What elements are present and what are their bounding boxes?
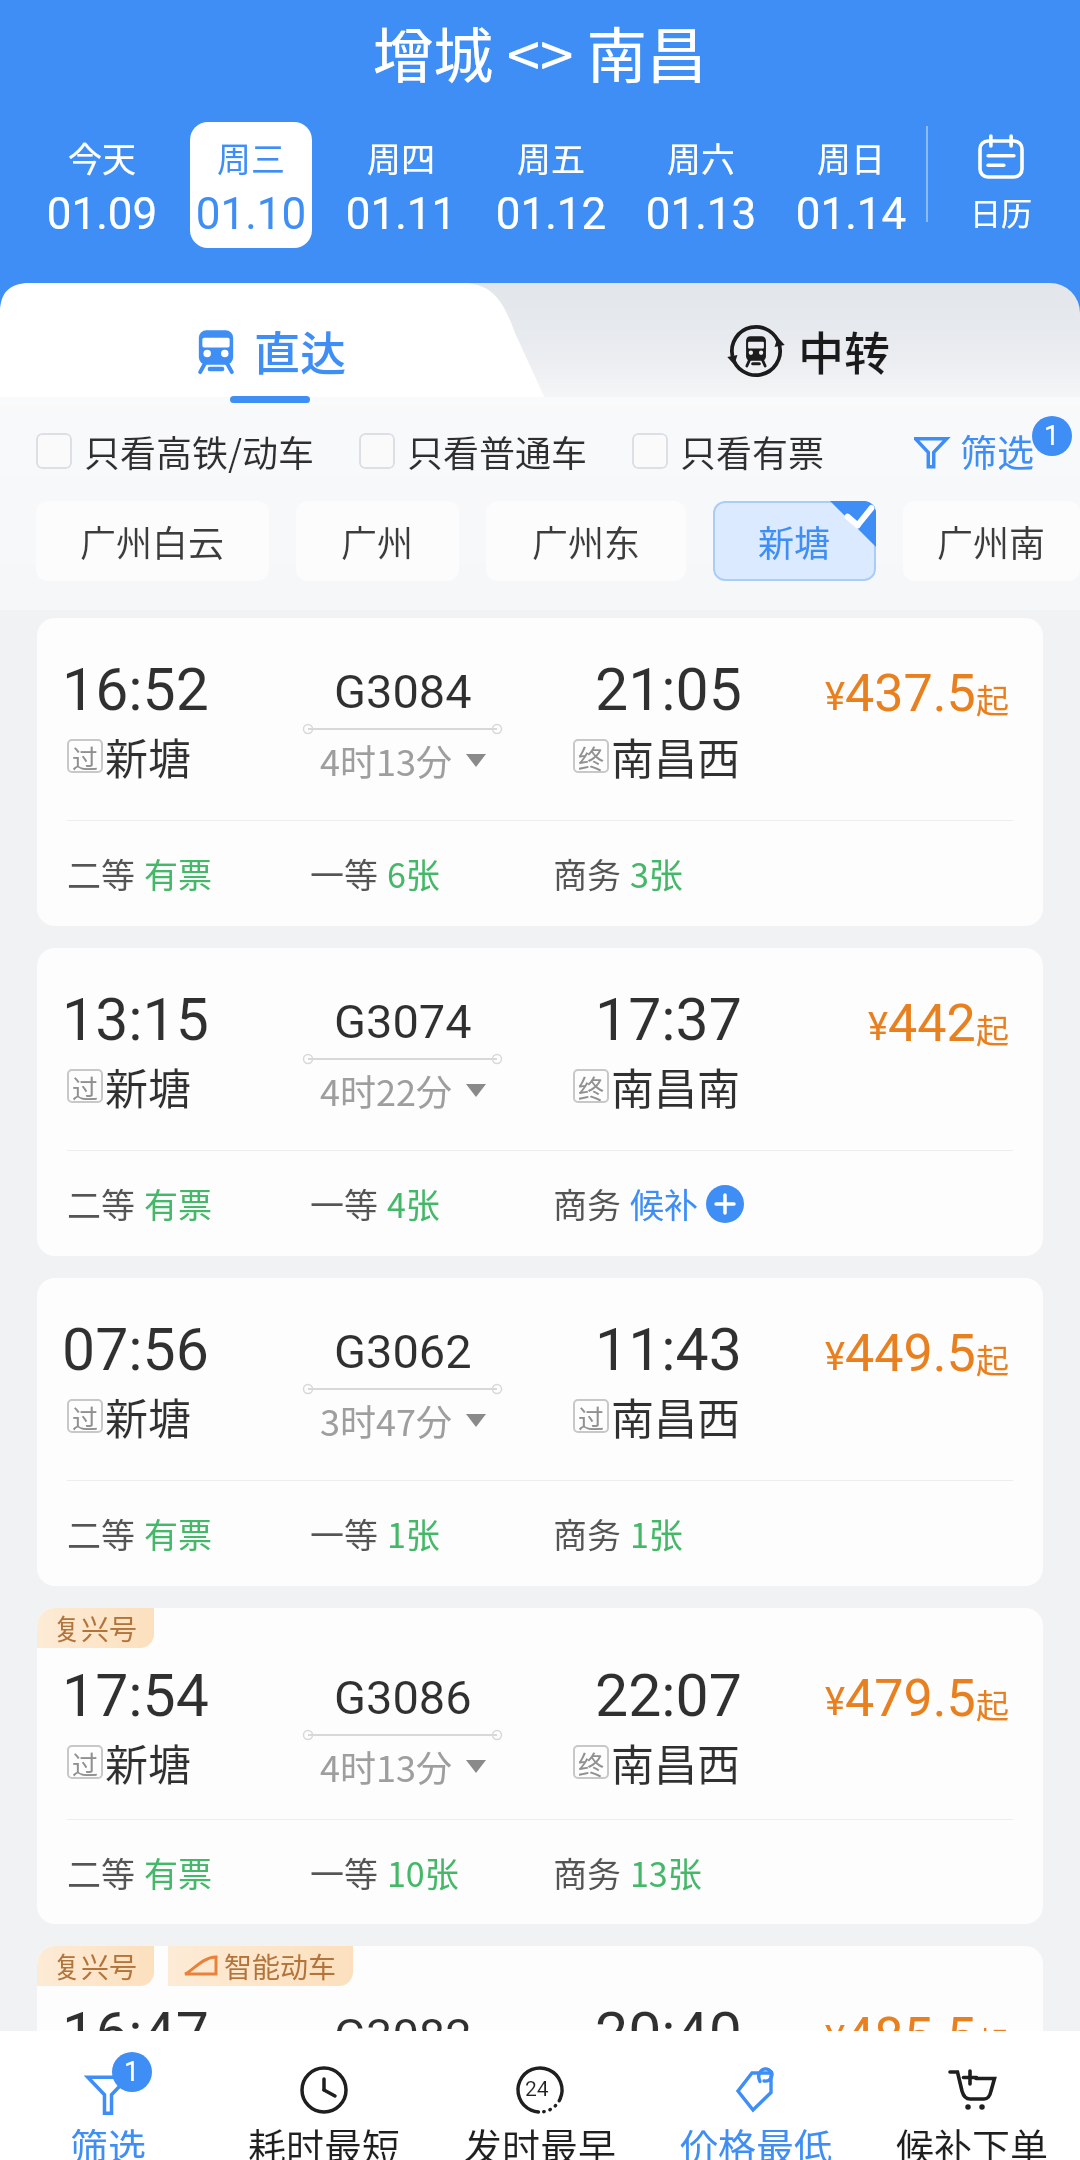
staticText: 南昌南	[611, 1055, 740, 1117]
staticText: 二等	[67, 849, 135, 898]
button[interactable]: 直达	[0, 283, 540, 411]
staticText: 智能动车	[224, 1946, 337, 1986]
button[interactable]: 筛选	[914, 424, 1034, 478]
staticText: 20:40	[595, 1999, 742, 2068]
staticText: 复兴号	[53, 1946, 138, 1986]
staticText: 1	[124, 2056, 140, 2088]
staticText: 二等	[67, 1179, 135, 1228]
staticText: 有票	[144, 1848, 212, 1897]
staticText: 13张	[630, 1848, 702, 1897]
staticText: 新塘	[105, 725, 191, 787]
staticText: 商务	[553, 1179, 621, 1228]
staticText: 新塘	[105, 1055, 191, 1117]
staticText: 广州南	[937, 515, 1046, 567]
staticText: 24	[525, 2077, 549, 2102]
staticText: 耗时最短	[248, 2117, 401, 2160]
button[interactable]: 周四	[340, 122, 462, 248]
staticText: 有票	[144, 849, 212, 898]
staticText: 起	[976, 675, 1009, 723]
staticText: 商务	[553, 1509, 621, 1558]
staticText: 22:07	[595, 1661, 742, 1730]
staticText: 终	[578, 1745, 605, 1779]
staticText: 3张	[630, 849, 683, 898]
button[interactable]: 只看普通车	[359, 425, 588, 477]
button[interactable]: 日历	[962, 122, 1040, 240]
button[interactable]: 24	[432, 2031, 648, 2160]
button[interactable]: 复兴号	[37, 1946, 1043, 2160]
staticText: 1张	[630, 1509, 683, 1558]
staticText: 南昌西	[611, 2069, 740, 2131]
staticText: 终	[578, 739, 605, 773]
button[interactable]: 1	[0, 2031, 216, 2160]
button[interactable]: 复兴号	[37, 1608, 1043, 1924]
staticText: 过	[72, 1745, 99, 1779]
button[interactable]: 广州	[296, 501, 459, 581]
staticText: 一等	[310, 1179, 378, 1228]
button[interactable]: 广州南	[903, 501, 1080, 581]
staticText: 17:37	[595, 985, 742, 1054]
staticText: 发时最早	[464, 2117, 617, 2160]
staticText: 只看高铁/动车	[84, 425, 315, 477]
staticText: 01.09	[41, 188, 163, 235]
staticText: 二等	[67, 1509, 135, 1558]
staticText: 新塘	[758, 515, 831, 567]
staticText: G3082	[334, 2008, 472, 2063]
staticText: 起	[976, 2018, 1009, 2066]
button[interactable]: 周三	[190, 122, 312, 248]
staticText: G3084	[334, 664, 472, 719]
staticText: 3时53分	[320, 2078, 452, 2130]
staticText: 01.14	[790, 188, 912, 235]
staticText: 13:15	[62, 985, 209, 1054]
button[interactable]: 候补下单	[864, 2031, 1080, 2160]
staticText: 南昌西	[611, 725, 740, 787]
button[interactable]: 价格最低	[648, 2031, 864, 2160]
button[interactable]: 16:52	[37, 618, 1043, 926]
staticText: 只看普通车	[407, 425, 588, 477]
staticText: 17:54	[62, 1661, 209, 1730]
staticText: 周三	[190, 133, 312, 182]
staticText: 广州东	[532, 515, 641, 567]
staticText: ¥	[868, 1005, 888, 1050]
button[interactable]: 只看有票	[632, 425, 825, 477]
staticText: 二等	[67, 1848, 135, 1897]
staticText: 有票	[144, 1179, 212, 1228]
staticText: 只看有票	[680, 425, 825, 477]
staticText: 4时13分	[320, 1740, 452, 1792]
button[interactable]: 只看高铁/动车	[36, 425, 315, 477]
staticText: ¥	[825, 1335, 845, 1380]
staticText: 4时22分	[320, 1064, 452, 1116]
button[interactable]: 今天	[41, 122, 163, 248]
staticText: 周五	[490, 133, 612, 182]
button[interactable]: 07:56	[37, 1278, 1043, 1586]
staticText: 16:52	[62, 655, 209, 724]
button[interactable]: 广州白云	[36, 501, 269, 581]
staticText: 新塘	[105, 2069, 191, 2131]
button[interactable]: 周六	[640, 122, 762, 248]
button[interactable]: 周日	[790, 122, 912, 248]
staticText: 过	[72, 739, 99, 773]
button[interactable]: 周五	[490, 122, 612, 248]
staticText: 一等	[310, 849, 378, 898]
button[interactable]: 13:15	[37, 948, 1043, 1256]
staticText: 01.12	[490, 188, 612, 235]
staticText: G3062	[334, 1324, 472, 1379]
staticText: 442	[888, 993, 976, 1054]
staticText: 4时13分	[320, 734, 452, 786]
staticText: 1	[1044, 420, 1060, 452]
staticText: 01.13	[640, 188, 762, 235]
staticText: 过	[72, 1069, 99, 1103]
staticText: 01.11	[340, 188, 462, 235]
staticText: 候补	[630, 1179, 698, 1228]
button[interactable]: 耗时最短	[216, 2031, 432, 2160]
button[interactable]: 新塘	[713, 501, 876, 581]
button[interactable]: 广州东	[486, 501, 686, 581]
staticText: 新塘	[105, 1385, 191, 1447]
staticText: 周日	[790, 133, 912, 182]
staticText: 广州	[341, 515, 414, 567]
staticText: 候补下单	[896, 2117, 1049, 2160]
staticText: 直达	[254, 317, 346, 384]
staticText: 01.10	[190, 188, 312, 235]
button[interactable]: 中转	[540, 283, 1080, 411]
staticText: 有票	[144, 1509, 212, 1558]
